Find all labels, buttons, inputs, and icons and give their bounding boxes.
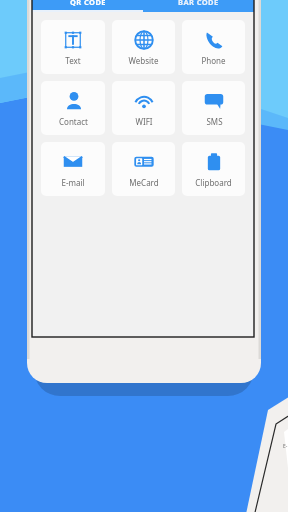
staticText: BAR CODE xyxy=(178,0,219,7)
button[interactable]: MeCard xyxy=(112,142,175,196)
staticText: MeCard xyxy=(129,177,159,188)
button[interactable]: WIFI xyxy=(112,81,175,135)
staticText: Website xyxy=(128,55,159,66)
button[interactable]: Text xyxy=(41,20,105,74)
button[interactable]: Contact xyxy=(41,81,105,135)
staticText: Contact xyxy=(59,116,88,127)
button[interactable]: QR CODE xyxy=(32,0,143,10)
staticText: Phone xyxy=(201,55,226,66)
staticText: Clipboard xyxy=(195,177,232,188)
staticText: QR CODE xyxy=(70,0,106,7)
button[interactable]: Website xyxy=(112,20,175,74)
button[interactable]: Clipboard xyxy=(182,142,245,196)
staticText: E-mail xyxy=(61,177,85,188)
staticText: SMS xyxy=(206,116,223,127)
staticText: E- xyxy=(283,443,288,450)
staticText: Text xyxy=(65,55,81,66)
button[interactable]: BAR CODE xyxy=(143,0,254,10)
button[interactable]: E-mail xyxy=(41,142,105,196)
button[interactable]: SMS xyxy=(182,81,245,135)
staticText: WIFI xyxy=(135,116,153,127)
button[interactable]: Phone xyxy=(182,20,245,74)
